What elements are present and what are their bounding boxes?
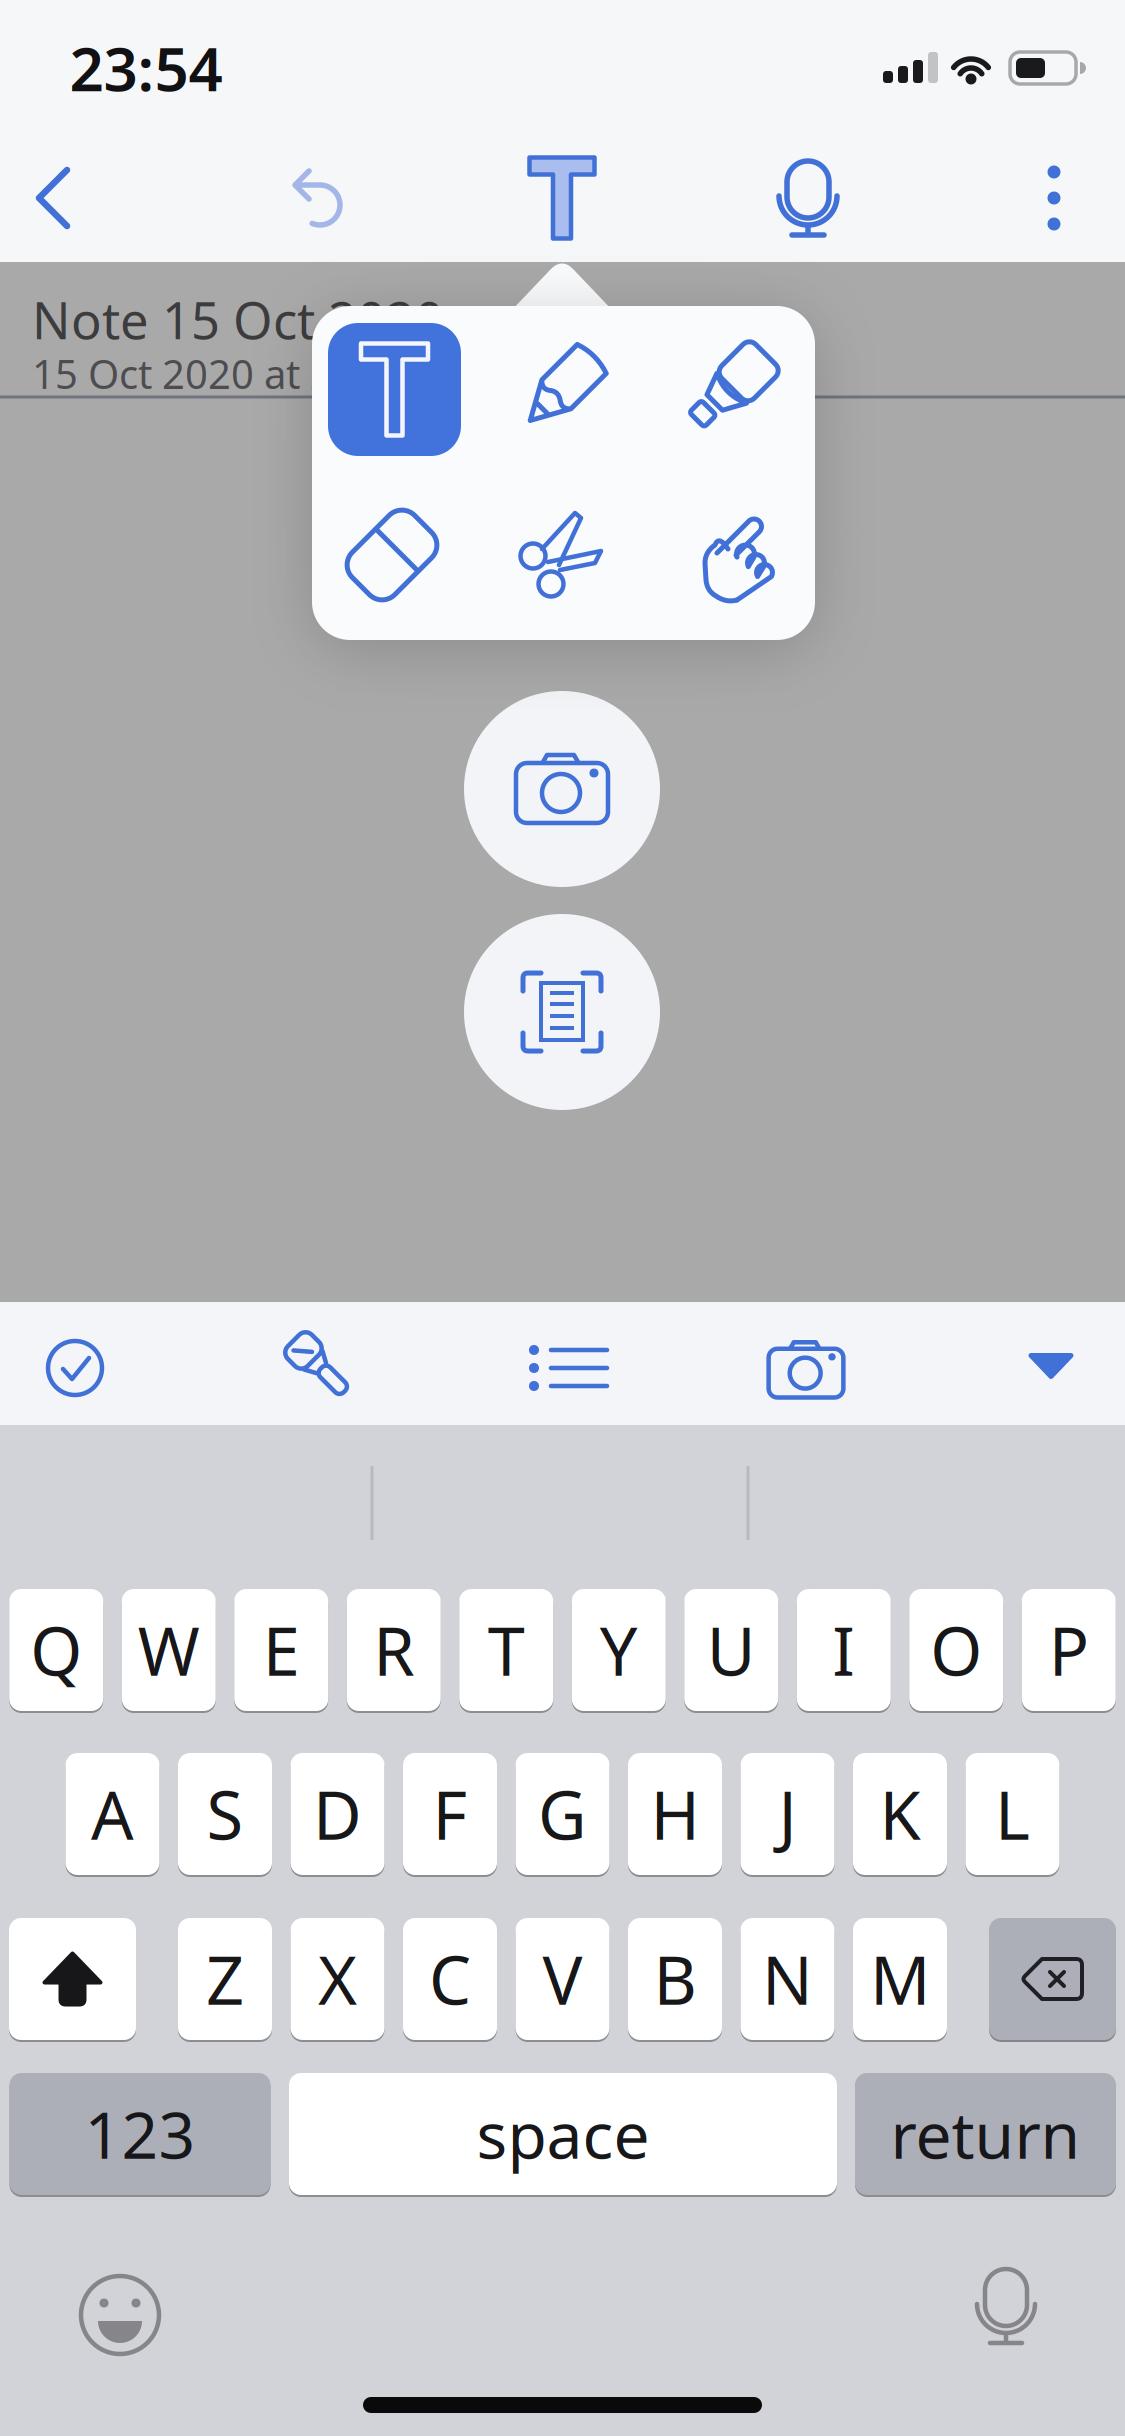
button[interactable]: A bbox=[65, 1752, 159, 1876]
staticText: C bbox=[429, 1935, 471, 2023]
staticText: U bbox=[707, 1606, 756, 1694]
button[interactable] bbox=[506, 334, 616, 444]
button[interactable]: space bbox=[289, 2072, 837, 2196]
button[interactable] bbox=[18, 153, 88, 243]
button[interactable]: N bbox=[740, 1917, 834, 2041]
button[interactable] bbox=[1016, 1336, 1086, 1396]
staticText: Q bbox=[30, 1606, 82, 1694]
button[interactable]: M bbox=[853, 1917, 947, 2041]
button[interactable]: X bbox=[290, 1917, 384, 2041]
staticText: D bbox=[313, 1770, 362, 1858]
button[interactable] bbox=[961, 2263, 1051, 2353]
button[interactable] bbox=[9, 1917, 136, 2041]
button[interactable] bbox=[1034, 158, 1074, 238]
button[interactable] bbox=[768, 157, 848, 243]
button[interactable]: V bbox=[515, 1917, 609, 2041]
button[interactable] bbox=[70, 2265, 170, 2365]
button[interactable]: Z bbox=[178, 1917, 272, 2041]
staticText: X bbox=[318, 1935, 357, 2023]
staticText: I bbox=[832, 1606, 855, 1694]
staticText: F bbox=[432, 1770, 467, 1858]
staticText: W bbox=[138, 1606, 200, 1694]
button[interactable]: B bbox=[628, 1917, 722, 2041]
button[interactable] bbox=[274, 1321, 364, 1411]
button[interactable] bbox=[464, 914, 660, 1110]
button[interactable] bbox=[685, 508, 781, 604]
staticText: N bbox=[762, 1935, 813, 2023]
button[interactable]: C bbox=[403, 1917, 497, 2041]
staticText: H bbox=[650, 1770, 699, 1858]
staticText: return bbox=[890, 2091, 1080, 2176]
staticText: V bbox=[542, 1935, 582, 2023]
staticText: B bbox=[653, 1935, 696, 2023]
button[interactable] bbox=[464, 691, 660, 887]
button[interactable]: O bbox=[909, 1588, 1003, 1712]
staticText: 123 bbox=[84, 2091, 195, 2176]
button[interactable] bbox=[676, 334, 786, 444]
staticText: J bbox=[778, 1770, 796, 1858]
button[interactable]: I bbox=[797, 1588, 891, 1712]
staticText: G bbox=[538, 1770, 587, 1858]
staticText: S bbox=[206, 1770, 243, 1858]
button[interactable]: W bbox=[122, 1588, 216, 1712]
staticText: R bbox=[373, 1606, 414, 1694]
button[interactable]: J bbox=[740, 1752, 834, 1876]
staticText: M bbox=[870, 1935, 930, 2023]
button[interactable]: return bbox=[855, 2072, 1116, 2196]
button[interactable]: F bbox=[403, 1752, 497, 1876]
staticText: L bbox=[995, 1770, 1030, 1858]
button[interactable]: L bbox=[965, 1752, 1059, 1876]
button[interactable]: R bbox=[347, 1588, 441, 1712]
button[interactable]: 123 bbox=[9, 2072, 270, 2196]
button[interactable]: G bbox=[515, 1752, 609, 1876]
button[interactable]: T bbox=[459, 1588, 553, 1712]
button[interactable] bbox=[278, 158, 358, 238]
staticText: T bbox=[488, 1606, 525, 1694]
button[interactable] bbox=[328, 323, 461, 456]
staticText: Note 15 Oct 2020 bbox=[32, 286, 444, 353]
button[interactable] bbox=[337, 500, 447, 610]
staticText: Z bbox=[206, 1935, 244, 2023]
button[interactable]: Y bbox=[572, 1588, 666, 1712]
button[interactable]: S bbox=[178, 1752, 272, 1876]
staticText: P bbox=[1049, 1606, 1089, 1694]
staticText: space bbox=[476, 2091, 649, 2176]
button[interactable] bbox=[516, 1333, 616, 1403]
staticText: 23:54 bbox=[69, 28, 222, 108]
staticText: K bbox=[879, 1770, 920, 1858]
button[interactable]: Q bbox=[9, 1588, 103, 1712]
staticText: A bbox=[91, 1770, 134, 1858]
button[interactable]: U bbox=[684, 1588, 778, 1712]
button[interactable]: K bbox=[853, 1752, 947, 1876]
staticText: 15 Oct 2020 at 23:54 bbox=[32, 347, 413, 400]
button[interactable]: H bbox=[628, 1752, 722, 1876]
button[interactable] bbox=[517, 150, 607, 245]
button[interactable] bbox=[761, 1335, 851, 1405]
staticText: O bbox=[930, 1606, 982, 1694]
button[interactable] bbox=[513, 505, 609, 601]
button[interactable]: D bbox=[290, 1752, 384, 1876]
button[interactable] bbox=[30, 1323, 120, 1413]
staticText: E bbox=[263, 1606, 300, 1694]
staticText: Y bbox=[600, 1606, 638, 1694]
button[interactable] bbox=[989, 1917, 1116, 2041]
button[interactable]: P bbox=[1022, 1588, 1116, 1712]
button[interactable]: E bbox=[234, 1588, 328, 1712]
